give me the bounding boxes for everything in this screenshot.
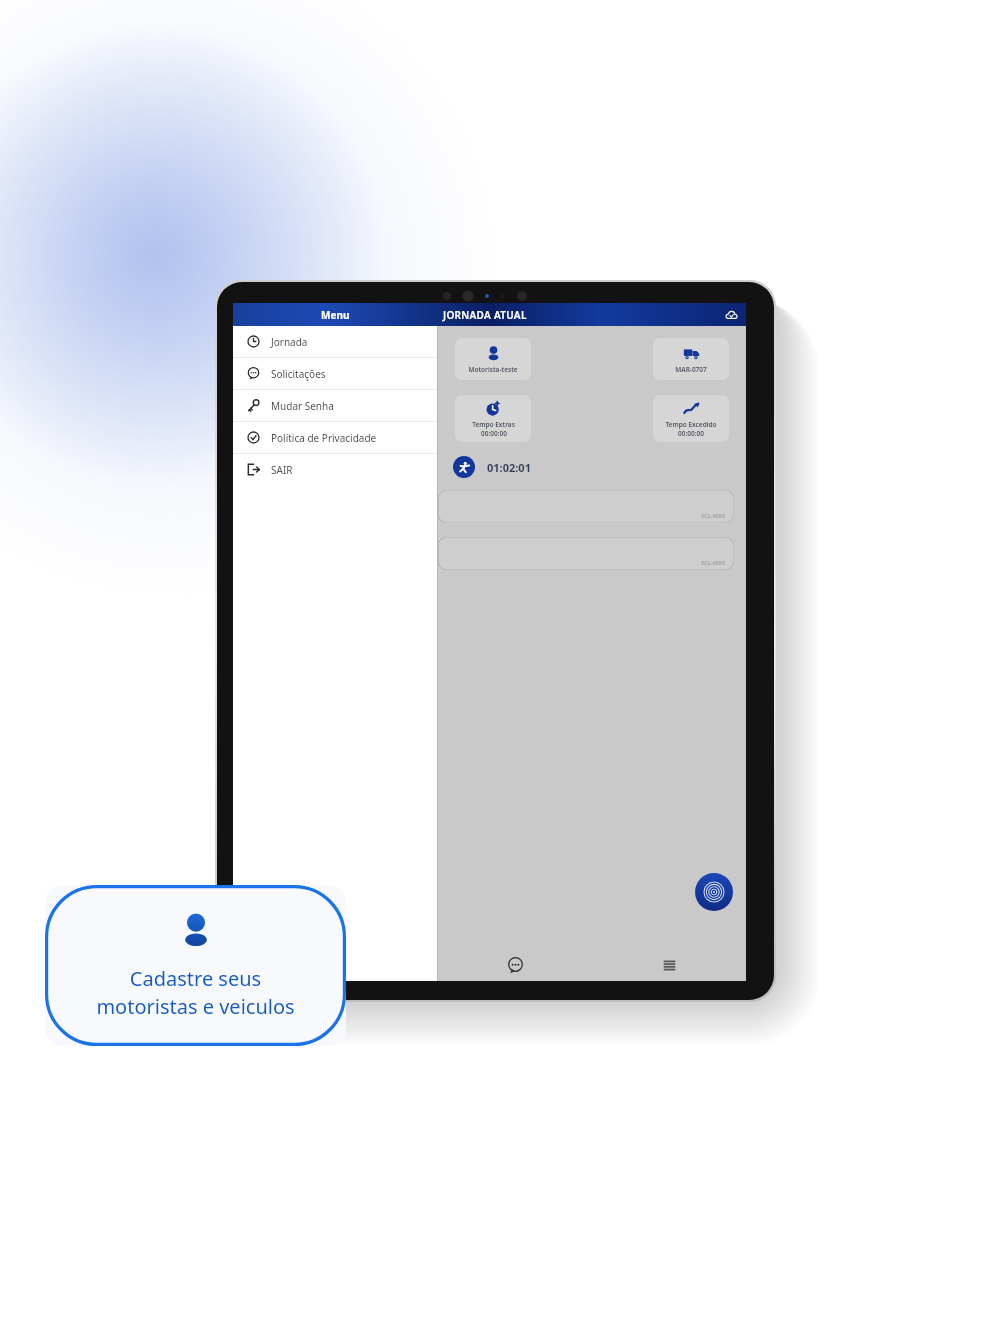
button[interactable]: Registrar ponto [695, 873, 733, 911]
button[interactable]: 01:02:01 [453, 456, 531, 478]
staticText: SCL-4E00 [701, 559, 725, 566]
staticText: JORNADA ATUAL [443, 308, 527, 322]
button[interactable]: Mensagens [438, 949, 592, 981]
button[interactable]: Cadastre seus motoristas e veiculos [45, 885, 346, 1046]
button[interactable]: SCL-4E00 [438, 537, 734, 570]
button[interactable]: Sincronizar [723, 307, 739, 323]
staticText: Solicitações [271, 367, 326, 381]
staticText: Mudar Senha [271, 399, 334, 413]
staticText: Cadastre seus motoristas e veiculos [96, 965, 295, 1020]
button[interactable]: Solicitações [233, 358, 437, 389]
staticText: Política de Privacidade [271, 431, 377, 445]
button[interactable]: Menu [592, 949, 746, 981]
staticText: 00:00:00 [481, 429, 507, 438]
button[interactable]: Política de Privacidade [233, 422, 437, 453]
staticText: Tempo Extras [472, 420, 515, 429]
staticText: Menu [321, 308, 350, 322]
button[interactable]: SAIR [233, 454, 437, 485]
button[interactable]: SCL-4E00 [438, 490, 734, 523]
button[interactable]: Tempo Excedido [653, 395, 729, 442]
staticText: 00:00:00 [678, 429, 704, 438]
button[interactable]: Mudar Senha [233, 390, 437, 421]
button[interactable]: Motorista-teste [455, 338, 531, 380]
button[interactable]: Jornada [233, 326, 437, 357]
staticText: 01:02:01 [487, 460, 531, 475]
staticText: SCL-4E00 [701, 512, 725, 519]
staticText: SAIR [271, 463, 293, 477]
button[interactable]: MAR-0707 [653, 338, 729, 380]
staticText: MAR-0707 [675, 365, 707, 374]
button[interactable]: Menu [233, 303, 437, 326]
staticText: Motorista-teste [468, 365, 518, 374]
staticText: Tempo Excedido [665, 420, 717, 429]
staticText: Jornada [271, 335, 308, 349]
button[interactable]: Tempo Extras [455, 395, 531, 442]
